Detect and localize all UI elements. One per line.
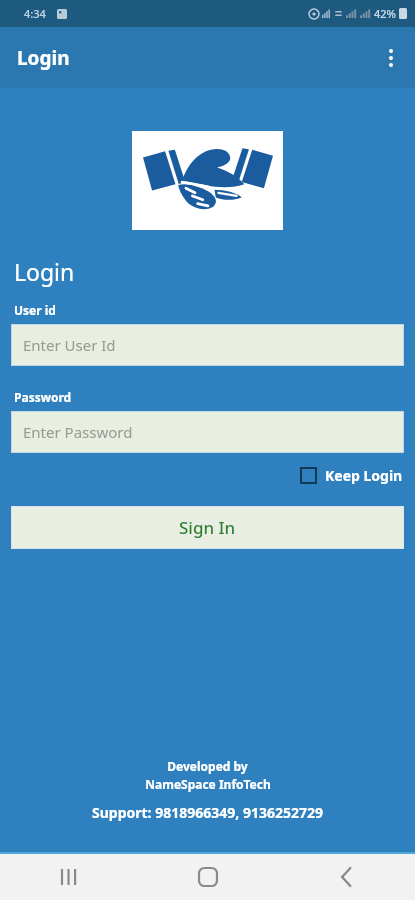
button[interactable]: Home bbox=[139, 854, 277, 900]
staticText: Support: 9818966349, 9136252729 bbox=[92, 803, 323, 822]
staticText: Enter Password bbox=[23, 422, 133, 442]
staticText: Login bbox=[17, 45, 70, 71]
staticText: Developed by bbox=[167, 758, 248, 774]
button[interactable]: Back bbox=[277, 854, 415, 900]
staticText: 42% bbox=[374, 6, 396, 21]
staticText: Keep Login bbox=[325, 466, 403, 485]
staticText: Password bbox=[14, 389, 72, 405]
button[interactable]: Enter Password bbox=[11, 411, 404, 453]
button[interactable]: Sign In bbox=[11, 506, 404, 549]
button[interactable]: More options bbox=[367, 34, 415, 82]
staticText: Login bbox=[14, 256, 75, 287]
button[interactable]: Recent apps bbox=[0, 854, 139, 900]
staticText: 4:34 bbox=[24, 6, 46, 21]
staticText: Sign In bbox=[179, 516, 236, 539]
button[interactable]: Keep Login bbox=[296, 462, 407, 489]
staticText: Enter User Id bbox=[23, 335, 116, 355]
staticText: NameSpace InfoTech bbox=[145, 776, 271, 792]
staticText: User id bbox=[14, 302, 56, 318]
button[interactable]: Enter User Id bbox=[11, 324, 404, 366]
